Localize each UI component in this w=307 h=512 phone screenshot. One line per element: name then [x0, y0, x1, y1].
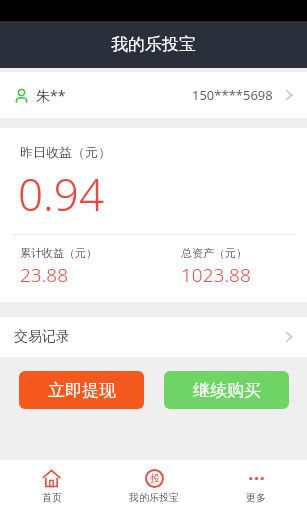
button[interactable]: More — [205, 460, 307, 512]
staticText: 150****5698 — [192, 86, 273, 104]
staticText: 朱** — [36, 86, 66, 105]
staticText: 更多 — [246, 491, 266, 504]
staticText: 我的乐投宝 — [111, 34, 196, 55]
staticText: 0.94 — [18, 164, 105, 224]
staticText: 累计收益（元） — [20, 246, 97, 260]
staticText: 立即提现 — [48, 380, 116, 401]
button[interactable]: 交易记录 — [0, 317, 307, 357]
staticText: 投 — [150, 472, 160, 485]
button[interactable]: 立即提现 — [19, 371, 144, 409]
button[interactable]: 继续购买 — [164, 371, 289, 409]
staticText: 昨日收益（元） — [20, 144, 111, 160]
button[interactable]: Home — [0, 460, 103, 512]
button[interactable]: 朱** — [0, 72, 307, 118]
staticText: 总资产（元） — [181, 246, 247, 260]
staticText: 交易记录 — [14, 328, 70, 346]
staticText: 1023.88 — [181, 262, 251, 288]
staticText: 继续购买 — [193, 380, 261, 401]
staticText: 23.88 — [20, 262, 69, 288]
button[interactable]: My LeTouBao — [103, 460, 205, 512]
staticText: 首页 — [42, 491, 62, 504]
staticText: 我的乐投宝 — [129, 491, 179, 504]
